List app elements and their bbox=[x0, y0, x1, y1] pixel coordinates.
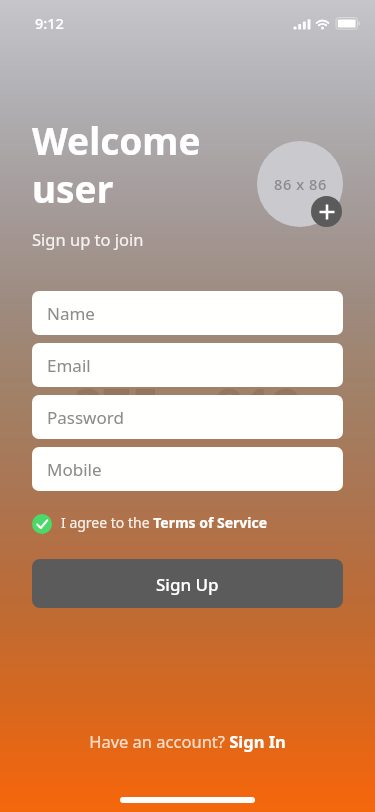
staticText: Sign Up bbox=[156, 573, 219, 596]
staticText: Have an account? Sign In bbox=[89, 730, 286, 752]
button[interactable]: Password bbox=[32, 395, 343, 439]
button[interactable]: I agree to the Terms of Service bbox=[32, 514, 268, 534]
button[interactable]: Profile photo bbox=[257, 141, 343, 227]
staticText: user bbox=[32, 163, 114, 213]
staticText: Email bbox=[47, 354, 91, 377]
staticText: Sign up to join bbox=[32, 228, 144, 250]
staticText: Password bbox=[47, 406, 124, 429]
staticText: 86 x 86 bbox=[274, 174, 327, 194]
button[interactable]: Have an account? Sign In bbox=[79, 726, 296, 756]
staticText: Name bbox=[47, 302, 95, 325]
staticText: 9:12 bbox=[35, 13, 64, 33]
staticText: I agree to the Terms of Service bbox=[61, 513, 268, 532]
button[interactable]: Mobile bbox=[32, 447, 343, 491]
button[interactable]: Name bbox=[32, 291, 343, 335]
staticText: Welcome bbox=[32, 115, 201, 165]
button[interactable]: Email bbox=[32, 343, 343, 387]
button[interactable]: Sign Up bbox=[32, 559, 343, 608]
staticText: 375 x 812 bbox=[74, 372, 301, 440]
button[interactable]: Add photo bbox=[311, 196, 342, 227]
staticText: Mobile bbox=[47, 458, 102, 481]
